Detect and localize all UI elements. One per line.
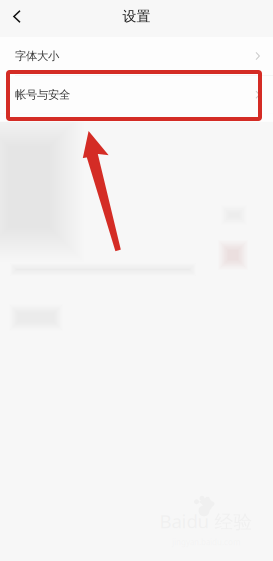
staticText: 帐号与安全 <box>15 88 70 102</box>
button[interactable]: 字体大小 <box>0 37 273 75</box>
button[interactable]: 帐号与安全 <box>0 76 273 114</box>
button[interactable]: Back <box>0 0 34 33</box>
staticText: 字体大小 <box>15 49 59 63</box>
staticText: 设置 <box>122 8 150 25</box>
